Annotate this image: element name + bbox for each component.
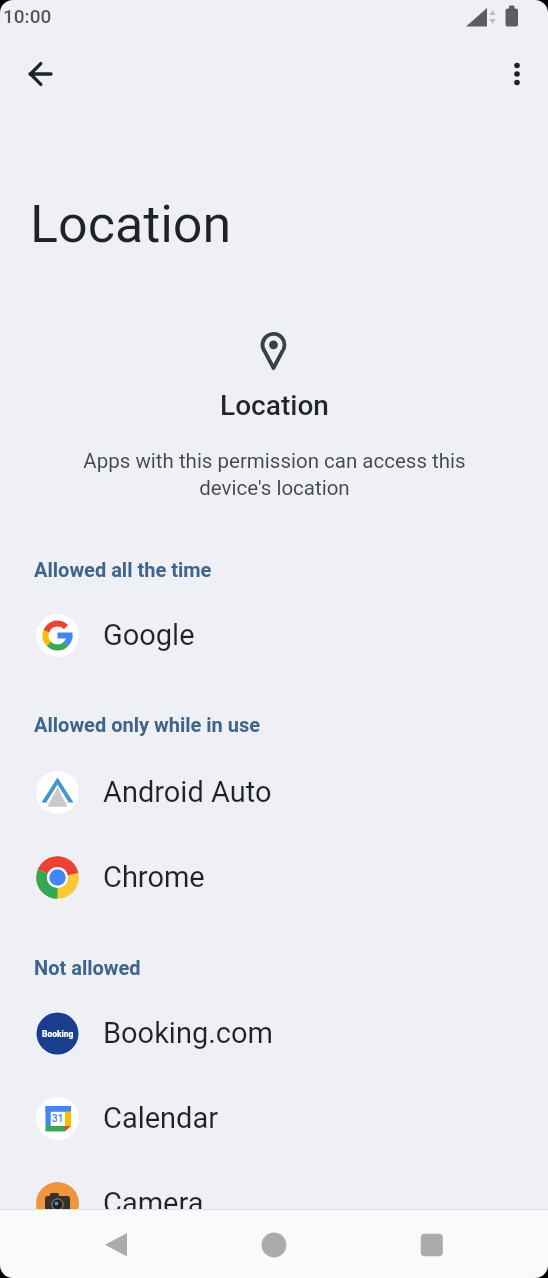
- staticText: 10:00: [3, 5, 52, 27]
- staticText: Allowed only while in use: [34, 713, 261, 736]
- button[interactable]: 31: [0, 1076, 548, 1160]
- button[interactable]: Booking: [0, 991, 548, 1075]
- staticText: Not allowed: [34, 956, 141, 979]
- staticText: Allowed all the time: [34, 558, 212, 581]
- staticText: Location: [30, 194, 232, 255]
- staticText: Booking: [42, 1029, 74, 1039]
- button[interactable]: [92, 1221, 140, 1269]
- staticText: Android Auto: [103, 775, 272, 809]
- staticText: Calendar: [103, 1101, 219, 1135]
- staticText: Google: [103, 618, 195, 652]
- button[interactable]: Google: [0, 593, 548, 677]
- staticText: Apps with this permission can access thi…: [83, 449, 466, 500]
- button[interactable]: Android Auto: [0, 750, 548, 834]
- staticText: Location: [220, 389, 329, 422]
- button[interactable]: [408, 1221, 456, 1269]
- button[interactable]: [250, 1221, 298, 1269]
- staticText: Booking.com: [103, 1016, 273, 1050]
- staticText: Chrome: [103, 860, 205, 894]
- button[interactable]: [493, 50, 541, 98]
- staticText: Camera: [103, 1186, 204, 1220]
- button[interactable]: [16, 50, 64, 98]
- button[interactable]: Camera: [0, 1161, 548, 1245]
- staticText: 31: [52, 1113, 64, 1125]
- button[interactable]: Chrome: [0, 835, 548, 919]
